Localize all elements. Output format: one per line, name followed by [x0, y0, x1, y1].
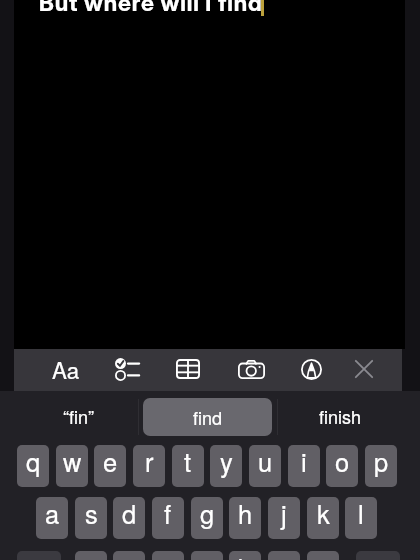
button[interactable]: h — [229, 497, 261, 539]
staticText: finish — [319, 403, 362, 429]
button[interactable]: Backspace — [356, 551, 400, 560]
button[interactable]: p — [365, 445, 397, 487]
staticText: But where will I find — [39, 0, 263, 17]
button[interactable]: Close keyboard — [342, 349, 386, 389]
staticText: q — [26, 445, 41, 480]
button[interactable]: w — [56, 445, 88, 487]
button[interactable]: Table — [166, 349, 210, 389]
staticText: l — [358, 497, 364, 532]
button[interactable]: Shift — [17, 551, 61, 560]
staticText: s — [85, 497, 98, 532]
staticText: w — [63, 445, 82, 480]
staticText: u — [258, 445, 273, 480]
button[interactable]: e — [94, 445, 126, 487]
staticText: y — [220, 445, 233, 480]
staticText: a — [45, 497, 60, 532]
button[interactable]: Text format — [44, 349, 88, 389]
staticText: h — [238, 497, 253, 532]
button[interactable]: “fin” — [22, 397, 135, 435]
button[interactable]: k — [307, 497, 339, 539]
button[interactable]: x — [113, 551, 145, 560]
staticText: r — [145, 445, 154, 480]
button[interactable]: finish — [284, 397, 397, 435]
staticText: Aa — [52, 353, 80, 385]
button[interactable]: s — [75, 497, 107, 539]
button[interactable]: r — [133, 445, 165, 487]
button[interactable]: c — [152, 551, 184, 560]
staticText: o — [335, 445, 350, 480]
button[interactable]: g — [191, 497, 223, 539]
staticText: e — [103, 445, 118, 480]
button[interactable]: d — [113, 497, 145, 539]
staticText: t — [184, 445, 192, 480]
button[interactable]: n — [268, 551, 300, 560]
staticText: d — [122, 497, 137, 532]
button[interactable]: t — [172, 445, 204, 487]
staticText: “fin” — [63, 403, 94, 429]
button[interactable]: a — [36, 497, 68, 539]
button[interactable]: y — [210, 445, 242, 487]
button[interactable]: Camera — [229, 349, 273, 389]
button[interactable]: l — [345, 497, 377, 539]
button[interactable]: q — [17, 445, 49, 487]
button[interactable]: find — [143, 398, 272, 436]
button[interactable]: Markup — [289, 349, 333, 389]
staticText: j — [281, 497, 287, 532]
button[interactable]: j — [268, 497, 300, 539]
button[interactable]: Note body — [14, 0, 405, 349]
staticText: k — [317, 497, 330, 532]
button[interactable]: b — [229, 551, 261, 560]
button[interactable]: z — [75, 551, 107, 560]
button[interactable]: v — [191, 551, 223, 560]
staticText: find — [193, 404, 223, 430]
staticText: b — [238, 551, 253, 560]
staticText: i — [301, 445, 307, 480]
button[interactable]: i — [288, 445, 320, 487]
staticText: g — [200, 497, 215, 532]
staticText: p — [374, 445, 389, 480]
button[interactable]: f — [152, 497, 184, 539]
button[interactable]: m — [307, 551, 339, 560]
button[interactable]: o — [326, 445, 358, 487]
button[interactable]: u — [249, 445, 281, 487]
staticText: f — [164, 497, 172, 532]
button[interactable]: Checklist — [105, 349, 149, 389]
